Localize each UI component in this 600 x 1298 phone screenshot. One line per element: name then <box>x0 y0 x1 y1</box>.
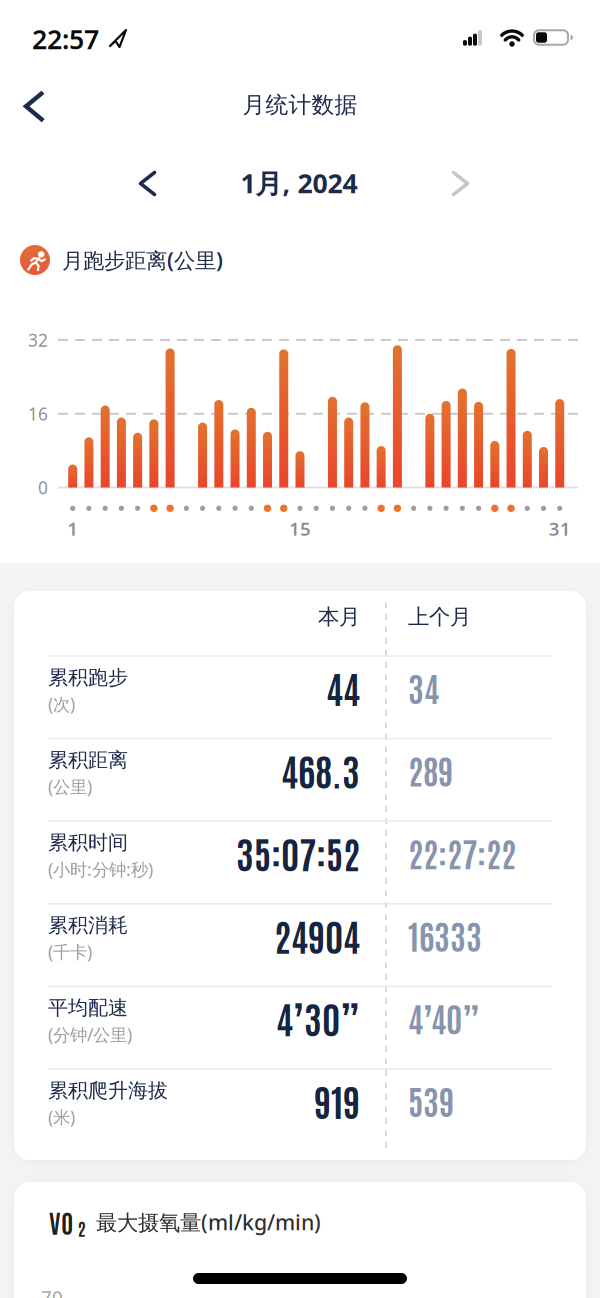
staticText: 539 <box>408 1078 454 1121</box>
staticText: 平均配速 <box>48 996 128 1020</box>
staticText: 1月, 2024 <box>240 165 357 201</box>
staticText: 24904 <box>274 911 360 959</box>
staticText: (公里) <box>48 775 92 798</box>
staticText: 本月 <box>318 604 360 630</box>
staticText: 31 <box>549 516 571 541</box>
staticText: 累积跑步 <box>48 665 128 690</box>
button[interactable] <box>440 164 480 202</box>
staticText: 累积距离 <box>48 748 128 772</box>
staticText: 4’30” <box>276 993 360 1041</box>
button[interactable] <box>18 76 62 136</box>
staticText: 累积时间 <box>48 830 128 855</box>
staticText: 15 <box>289 516 311 541</box>
staticText: 35:07:52 <box>236 828 360 876</box>
staticText: 468.3 <box>281 745 360 794</box>
staticText: 4’40” <box>408 996 480 1039</box>
staticText: 16333 <box>408 913 482 956</box>
staticText: 70 <box>41 1285 63 1298</box>
staticText: VO <box>49 1206 73 1238</box>
staticText: 累积消耗 <box>48 913 128 938</box>
staticText: 44 <box>326 663 360 711</box>
staticText: 上个月 <box>408 604 471 630</box>
staticText: 22:27:22 <box>408 831 516 874</box>
staticText: (米) <box>48 1105 75 1128</box>
staticText: 22:57 <box>32 21 99 57</box>
staticText: (小时:分钟:秒) <box>48 858 153 881</box>
staticText: 累积爬升海拔 <box>48 1078 168 1103</box>
staticText: 0 <box>38 476 48 499</box>
staticText: 1 <box>67 516 78 541</box>
button[interactable] <box>128 164 168 202</box>
staticText: (次) <box>48 692 75 715</box>
staticText: 34 <box>408 665 439 708</box>
staticText: 月跑步距离(公里) <box>62 246 223 274</box>
staticText: 32 <box>28 328 48 351</box>
staticText: (千卡) <box>48 940 92 963</box>
staticText: 16 <box>28 402 48 425</box>
staticText: 最大摄氧量(ml/kg/min) <box>96 1208 321 1236</box>
staticText: 919 <box>314 1076 360 1124</box>
staticText: 289 <box>408 748 453 791</box>
staticText: (分钟/公里) <box>48 1023 132 1046</box>
staticText: 月统计数据 <box>242 91 357 119</box>
staticText: 2 <box>77 1216 85 1239</box>
